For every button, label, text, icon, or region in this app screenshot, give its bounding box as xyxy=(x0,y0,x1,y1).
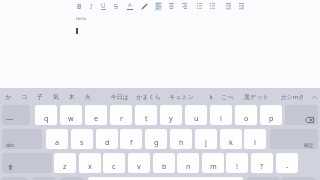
button[interactable]: v xyxy=(128,153,150,173)
staticText: n xyxy=(186,161,191,171)
button[interactable]: Highlight xyxy=(138,0,150,12)
button[interactable]: Decrease indent xyxy=(222,0,234,12)
staticText: 確定 xyxy=(304,142,314,148)
staticText: コ xyxy=(21,93,28,101)
staticText: t xyxy=(145,113,148,123)
button[interactable]: Bulleted list xyxy=(193,0,205,12)
button[interactable]: Increase indent xyxy=(235,0,247,12)
button[interactable]: f xyxy=(120,129,142,149)
button[interactable]: n xyxy=(177,153,199,173)
staticText: 木 xyxy=(69,93,75,101)
staticText: x xyxy=(88,161,92,171)
staticText: o xyxy=(244,113,249,123)
button[interactable]: Backspace xyxy=(285,105,318,125)
button[interactable]: Tab xyxy=(2,105,30,125)
staticText: v xyxy=(137,161,141,171)
button[interactable]: p xyxy=(260,105,282,125)
button[interactable]: Text colour xyxy=(124,0,136,12)
staticText: こべ xyxy=(221,93,234,101)
button[interactable]: l xyxy=(244,129,266,149)
staticText: h xyxy=(179,137,184,147)
button[interactable]: Numbered list xyxy=(206,0,218,12)
staticText: g xyxy=(154,137,159,147)
button[interactable]: ? xyxy=(251,153,273,173)
button[interactable]: w xyxy=(60,105,82,125)
button[interactable]: More suggestions xyxy=(308,90,320,104)
button[interactable]: c xyxy=(103,153,125,173)
button[interactable]: i xyxy=(210,105,232,125)
button[interactable]: コ xyxy=(8,90,40,104)
button[interactable]: 火 xyxy=(72,90,104,104)
staticText: k xyxy=(209,93,213,101)
button[interactable]: x xyxy=(79,153,101,173)
button[interactable]: q xyxy=(35,105,57,125)
button[interactable]: h xyxy=(170,129,192,149)
button[interactable]: o xyxy=(235,105,257,125)
staticText: 黒デット xyxy=(244,93,269,101)
button[interactable]: 今日は xyxy=(103,90,135,104)
staticText: B xyxy=(77,2,82,11)
button[interactable]: abc xyxy=(2,129,42,149)
button[interactable]: Align left xyxy=(152,0,164,12)
staticText: U xyxy=(101,1,106,9)
button[interactable]: Strikethrough xyxy=(110,0,122,12)
button[interactable]: Align right xyxy=(178,0,190,12)
staticText: A xyxy=(128,1,132,9)
button[interactable]: こべ xyxy=(211,90,243,104)
button[interactable]: かまくら xyxy=(132,90,164,104)
staticText: 火 xyxy=(85,93,91,101)
button[interactable]: カシmさ xyxy=(276,90,308,104)
staticText: Hello xyxy=(76,16,87,22)
button[interactable]: e xyxy=(85,105,107,125)
button[interactable]: k xyxy=(195,90,227,104)
button[interactable]: u xyxy=(185,105,207,125)
button[interactable]: b xyxy=(153,153,175,173)
button[interactable]: 木 xyxy=(56,90,88,104)
button[interactable]: y xyxy=(160,105,182,125)
button[interactable]: 気 xyxy=(40,90,72,104)
button[interactable]: ! xyxy=(226,153,248,173)
staticText: e xyxy=(94,113,99,123)
staticText: r xyxy=(120,113,123,123)
staticText: w xyxy=(68,113,74,123)
staticText: キュトン xyxy=(169,93,194,101)
button[interactable]: j xyxy=(195,129,217,149)
button[interactable]: s xyxy=(71,129,93,149)
button[interactable]: z xyxy=(54,153,76,173)
staticText: かまくら xyxy=(136,93,161,101)
button[interactable]: d xyxy=(96,129,118,149)
button[interactable]: r xyxy=(110,105,132,125)
staticText: s xyxy=(80,137,84,147)
button[interactable]: Italic xyxy=(85,0,97,12)
staticText: j xyxy=(205,137,207,147)
staticText: - xyxy=(286,161,289,171)
staticText: S xyxy=(114,2,118,11)
staticText: p xyxy=(269,113,274,123)
button[interactable]: m xyxy=(202,153,224,173)
button[interactable]: キュトン xyxy=(165,90,197,104)
button[interactable]: a xyxy=(46,129,68,149)
button[interactable]: か xyxy=(0,90,24,104)
button[interactable]: Shift xyxy=(2,153,52,173)
button[interactable]: t xyxy=(135,105,157,125)
button[interactable]: k xyxy=(220,129,242,149)
button[interactable]: Underline xyxy=(97,0,109,12)
staticText: q xyxy=(44,113,49,123)
button[interactable]: Align centre xyxy=(165,0,177,12)
button[interactable]: 子 xyxy=(24,90,56,104)
button[interactable]: 確定 xyxy=(270,129,318,149)
staticText: か xyxy=(5,93,12,101)
button[interactable]: Bold xyxy=(73,0,85,12)
staticText: I xyxy=(90,2,93,11)
button[interactable]: - xyxy=(276,153,298,173)
button[interactable]: g xyxy=(145,129,167,149)
staticText: f xyxy=(130,137,133,147)
button[interactable]: 黒デット xyxy=(240,90,272,104)
staticText: k xyxy=(229,137,233,147)
